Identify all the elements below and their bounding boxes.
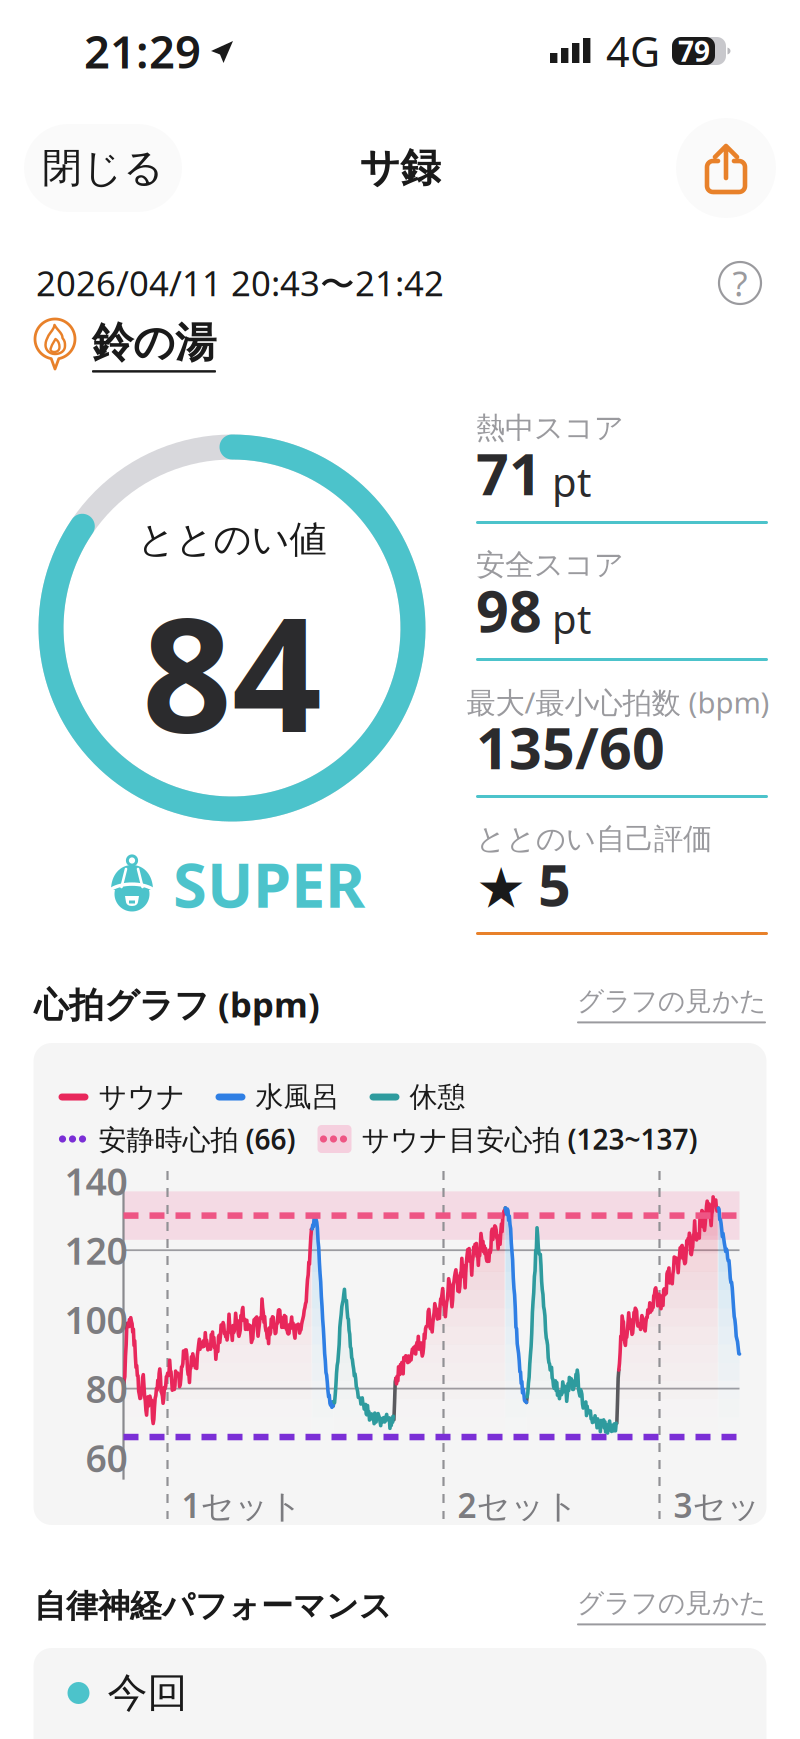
staticText: 水風呂	[255, 1080, 339, 1114]
staticText: 60	[85, 1433, 127, 1483]
staticText: 140	[64, 1156, 127, 1206]
staticText: pt	[552, 592, 591, 645]
staticText: 4G	[606, 24, 660, 78]
staticText: 2セット	[457, 1483, 578, 1527]
button[interactable]: グラフの見かた	[577, 1587, 766, 1625]
staticText: 自律神経パフォーマンス	[34, 1586, 392, 1626]
staticText: 79	[678, 32, 710, 70]
staticText: 71	[476, 435, 542, 511]
staticText: 135/60	[476, 709, 665, 785]
button[interactable]: グラフの見かた	[577, 985, 766, 1023]
staticText: サ録	[359, 143, 440, 192]
staticText: サウナ目安心拍 (123~137)	[361, 1120, 697, 1158]
staticText: 今回	[107, 1668, 187, 1717]
staticText: 熱中スコア	[476, 410, 624, 446]
staticText: 21:29	[84, 21, 201, 81]
button[interactable]: 鈴の湯	[0, 314, 800, 376]
staticText: サウナ	[98, 1080, 185, 1114]
staticText: 98	[476, 572, 542, 648]
staticText: グラフの見かた	[577, 1587, 766, 1619]
button[interactable]: ヘルプ	[716, 259, 764, 307]
staticText: 1セット	[181, 1483, 302, 1527]
staticText: 3セッ	[673, 1483, 760, 1527]
button[interactable]: 閉じる	[24, 124, 182, 212]
staticText: 安静時心拍 (66)	[98, 1120, 295, 1158]
staticText: グラフの見かた	[577, 985, 766, 1017]
staticText: pt	[552, 455, 591, 508]
staticText: 84	[142, 566, 322, 775]
staticText: ?	[732, 260, 747, 306]
staticText: 最大/最小心拍数 (bpm)	[466, 682, 769, 721]
staticText: 120	[64, 1225, 127, 1275]
staticText: 100	[64, 1295, 127, 1344]
staticText: SUPER	[173, 843, 365, 925]
staticText: 心拍グラフ (bpm)	[34, 981, 320, 1027]
staticText: 80	[85, 1364, 127, 1413]
staticText: ★	[476, 856, 526, 920]
staticText: ととのい自己評価	[476, 821, 712, 857]
staticText: 2026/04/11 20:43〜21:42	[36, 260, 444, 306]
staticText: 5	[538, 846, 571, 922]
staticText: ととのい値	[137, 517, 326, 562]
staticText: 安全スコア	[476, 547, 624, 583]
button[interactable]: 共有	[676, 118, 776, 218]
staticText: 閉じる	[42, 143, 164, 192]
staticText: 休憩	[409, 1080, 465, 1114]
staticText: 鈴の湯	[92, 317, 216, 368]
